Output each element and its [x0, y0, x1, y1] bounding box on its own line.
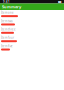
staticText: Item four [1, 36, 14, 39]
staticText: ▮▮▮ [58, 0, 61, 3]
staticText: Item two [1, 19, 13, 23]
staticText: Item one [1, 11, 14, 14]
staticText: Item three [1, 28, 16, 31]
staticText: Item five [1, 44, 13, 48]
staticText: 9:41 [3, 0, 10, 3]
staticText: Summary [2, 4, 21, 9]
